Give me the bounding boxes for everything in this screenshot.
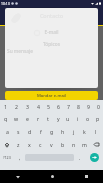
button[interactable]: u bbox=[63, 112, 73, 125]
staticText: s bbox=[17, 128, 20, 135]
button[interactable]: Shift bbox=[0, 138, 13, 151]
button[interactable]: 6 bbox=[53, 100, 63, 112]
staticText: 4 bbox=[37, 103, 40, 110]
button[interactable]: 1 bbox=[0, 100, 11, 112]
button[interactable]: j bbox=[68, 125, 79, 138]
staticText: 7 bbox=[67, 103, 70, 110]
button[interactable]: z bbox=[13, 138, 24, 151]
staticText: b bbox=[61, 141, 65, 148]
button[interactable]: o bbox=[83, 112, 93, 125]
staticText: e bbox=[26, 115, 29, 122]
button[interactable]: a bbox=[2, 125, 13, 138]
staticText: w bbox=[14, 115, 19, 122]
staticText: Su mensaje bbox=[7, 48, 33, 55]
staticText: x bbox=[28, 141, 31, 148]
button[interactable]: r bbox=[33, 112, 43, 125]
staticText: 3 bbox=[26, 103, 29, 110]
staticText: n bbox=[72, 141, 76, 148]
button[interactable]: , bbox=[14, 151, 25, 164]
staticText: 0 bbox=[97, 103, 100, 110]
staticText: y bbox=[57, 115, 60, 122]
staticText: z bbox=[17, 141, 20, 148]
button[interactable]: p bbox=[93, 112, 103, 125]
staticText: ?123 bbox=[3, 155, 11, 160]
button[interactable]: c bbox=[35, 138, 46, 151]
button[interactable]: Back bbox=[0, 170, 35, 183]
button[interactable]: e bbox=[22, 112, 33, 125]
button[interactable]: 4 bbox=[33, 100, 43, 112]
staticText: E-mail bbox=[5, 29, 98, 36]
button[interactable]: 8 bbox=[73, 100, 83, 112]
button[interactable]: d bbox=[24, 125, 35, 138]
button[interactable]: 2 bbox=[11, 100, 22, 112]
button[interactable]: ?123 bbox=[0, 151, 14, 164]
staticText: v bbox=[50, 141, 53, 148]
staticText: Tópicos bbox=[5, 41, 98, 48]
button[interactable]: 7 bbox=[63, 100, 73, 112]
button[interactable]: m bbox=[79, 138, 90, 151]
staticText: j bbox=[73, 128, 75, 135]
button[interactable]: h bbox=[57, 125, 68, 138]
staticText: o bbox=[86, 115, 90, 122]
staticText: p bbox=[96, 115, 100, 122]
staticText: l bbox=[95, 128, 97, 135]
button[interactable]: b bbox=[57, 138, 68, 151]
staticText: 6 bbox=[57, 103, 60, 110]
staticText: 9 bbox=[87, 103, 90, 110]
button[interactable]: Send bbox=[85, 151, 103, 164]
staticText: 8 bbox=[77, 103, 80, 110]
staticText: , bbox=[19, 154, 21, 161]
button[interactable]: n bbox=[68, 138, 79, 151]
button[interactable]: Backspace bbox=[90, 138, 103, 151]
staticText: 1 bbox=[4, 103, 7, 110]
staticText: k bbox=[83, 128, 86, 135]
staticText: c bbox=[39, 141, 42, 148]
button[interactable]: v bbox=[46, 138, 57, 151]
button[interactable]: y bbox=[53, 112, 63, 125]
staticText: h bbox=[61, 128, 65, 135]
staticText: t bbox=[47, 115, 49, 122]
button[interactable]: 0 bbox=[93, 100, 103, 112]
staticText: r bbox=[37, 115, 40, 122]
button[interactable]: l bbox=[90, 125, 101, 138]
button[interactable]: 5 bbox=[43, 100, 53, 112]
button[interactable]: k bbox=[79, 125, 90, 138]
button[interactable]: s bbox=[13, 125, 24, 138]
staticText: g bbox=[50, 128, 54, 135]
button[interactable]: g bbox=[46, 125, 57, 138]
button[interactable]: f bbox=[35, 125, 46, 138]
staticText: q bbox=[4, 115, 8, 122]
staticText: m bbox=[82, 141, 87, 148]
button[interactable]: q bbox=[0, 112, 11, 125]
button[interactable]: x bbox=[24, 138, 35, 151]
staticText: Mandar e-mail bbox=[37, 93, 67, 99]
staticText: 2 bbox=[15, 103, 18, 110]
staticText: d bbox=[28, 128, 32, 135]
staticText: 10:13 bbox=[1, 1, 10, 6]
staticText: f bbox=[40, 128, 42, 135]
button[interactable]: . bbox=[74, 151, 85, 164]
staticText: a bbox=[6, 128, 9, 135]
button[interactable]: Recents bbox=[69, 170, 103, 183]
button[interactable]: 3 bbox=[22, 100, 33, 112]
staticText: u bbox=[66, 115, 70, 122]
staticText: 5 bbox=[47, 103, 50, 110]
button[interactable]: t bbox=[43, 112, 53, 125]
staticText: i bbox=[77, 115, 79, 122]
button[interactable]: Mandar e-mail bbox=[5, 91, 98, 100]
staticText: . bbox=[79, 154, 81, 161]
button[interactable]: 9 bbox=[83, 100, 93, 112]
button[interactable]: i bbox=[73, 112, 83, 125]
button[interactable]: w bbox=[11, 112, 22, 125]
button[interactable]: Home bbox=[35, 170, 69, 183]
